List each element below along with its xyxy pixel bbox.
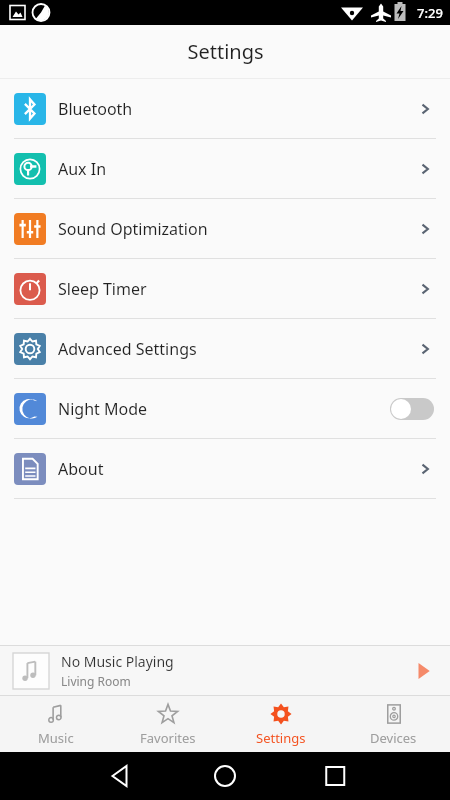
staticText: Settings (256, 729, 306, 747)
button[interactable]: Music (0, 702, 112, 747)
button[interactable]: About (0, 439, 450, 498)
button[interactable]: Play (409, 657, 437, 685)
staticText: 7:29 (417, 4, 443, 22)
staticText: Night Mode (58, 398, 148, 420)
staticText: Advanced Settings (58, 338, 197, 360)
staticText: Sleep Timer (58, 278, 147, 300)
button[interactable]: Sleep Timer (0, 259, 450, 318)
button[interactable]: Devices (337, 702, 450, 747)
staticText: No Music Playing (61, 652, 174, 671)
button[interactable]: Bluetooth (0, 79, 450, 138)
staticText: Bluetooth (58, 98, 133, 120)
staticText: Favorites (140, 729, 196, 747)
staticText: Living Room (61, 673, 131, 689)
button[interactable]: Sound Optimization (0, 199, 450, 258)
staticText: Settings (187, 38, 264, 65)
staticText: Sound Optimization (58, 218, 208, 240)
button[interactable]: Night Mode toggle (390, 398, 434, 420)
button[interactable]: Night Mode (0, 379, 450, 438)
staticText: Music (38, 729, 74, 747)
button[interactable]: Advanced Settings (0, 319, 450, 378)
staticText: Aux In (58, 158, 107, 180)
staticText: Devices (370, 729, 417, 747)
button[interactable]: Settings (224, 702, 337, 747)
staticText: About (58, 458, 104, 480)
button[interactable]: Favorites (112, 702, 224, 747)
button[interactable]: Aux In (0, 139, 450, 198)
button[interactable]: No Music Playing (0, 646, 450, 695)
